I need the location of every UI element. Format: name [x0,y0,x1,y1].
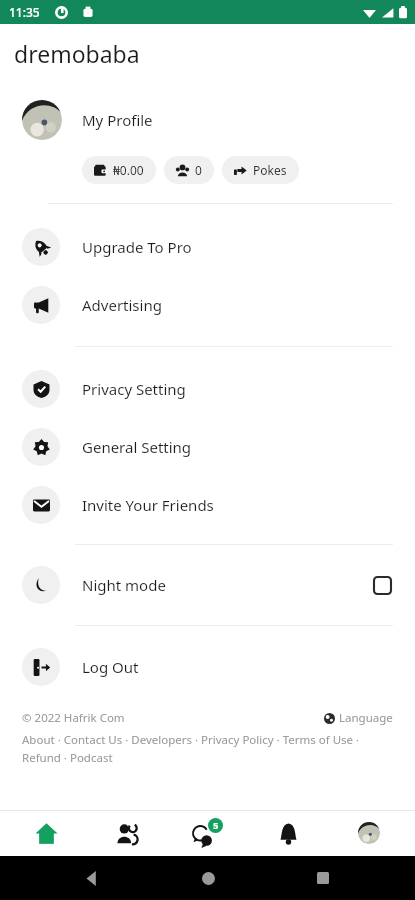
staticText: ₦0.00 [113,162,144,178]
staticText: General Setting [82,437,192,457]
button[interactable]: Night mode [0,556,415,614]
button[interactable]: Profile [334,810,404,856]
staticText: Language [339,710,393,726]
button[interactable]: Log Out [0,638,415,696]
button[interactable]: About · Contact Us · Developers · Privac… [22,732,393,765]
staticText: Invite Your Friends [82,495,214,515]
button[interactable]: 0 [164,156,214,184]
button[interactable]: Messages [173,810,243,856]
staticText: Pokes [253,162,287,178]
button[interactable]: General Setting [0,418,415,476]
button[interactable]: Home [184,856,232,900]
staticText: Privacy Setting [82,379,186,399]
button[interactable]: Friends [92,810,162,856]
button[interactable]: Language [324,710,393,726]
button[interactable]: Toggle night mode [371,574,393,596]
button[interactable]: Privacy Setting [0,360,415,418]
button[interactable]: ₦0.00 [82,156,156,184]
staticText: dremobaba [14,38,140,69]
button[interactable]: Recents [299,856,347,900]
button[interactable]: Invite Your Friends [0,476,415,534]
button[interactable]: Home [11,810,81,856]
button[interactable]: Pokes [222,156,299,184]
button[interactable]: Notifications [253,810,323,856]
button[interactable]: Upgrade To Pro [0,218,415,276]
button[interactable]: My Profile [0,96,415,144]
staticText: Advertising [82,295,162,315]
staticText: Log Out [82,657,139,677]
button[interactable]: Back [68,856,116,900]
staticText: 5 [213,819,219,832]
staticText: 0 [195,162,202,178]
staticText: My Profile [82,110,153,130]
staticText: Upgrade To Pro [82,237,192,257]
button[interactable]: Advertising [0,276,415,334]
staticText: Night mode [82,575,166,595]
staticText: 11:35 [9,4,40,20]
staticText: © 2022 Hafrik Com [22,710,125,726]
